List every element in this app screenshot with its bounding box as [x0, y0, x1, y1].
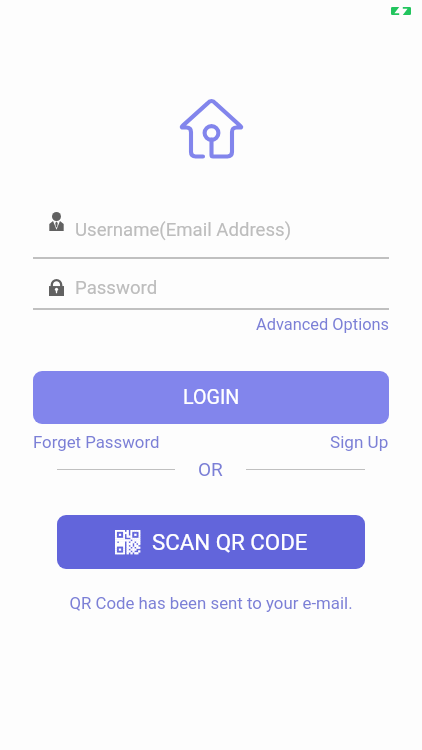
button[interactable]: Sign Up	[330, 432, 389, 452]
button[interactable]: Forget Password	[33, 432, 160, 452]
staticText: QR Code has been sent to your e-mail.	[0, 593, 422, 613]
other: Recording indicator	[391, 7, 411, 15]
staticText: Username(Email Address)	[75, 219, 292, 241]
button[interactable]: SCAN QR CODE	[57, 515, 365, 569]
button[interactable]: Username(Email Address)	[49, 208, 389, 257]
staticText: Sign Up	[330, 432, 389, 452]
staticText: Password	[75, 277, 158, 299]
staticText: LOGIN	[183, 386, 240, 409]
button[interactable]: Advanced Options	[256, 315, 389, 334]
staticText: Advanced Options	[256, 315, 389, 334]
staticText: SCAN QR CODE	[152, 529, 308, 555]
button[interactable]: LOGIN	[33, 371, 389, 424]
staticText: Forget Password	[33, 432, 160, 452]
button[interactable]: Password	[49, 259, 389, 308]
staticText: OR	[198, 458, 223, 480]
